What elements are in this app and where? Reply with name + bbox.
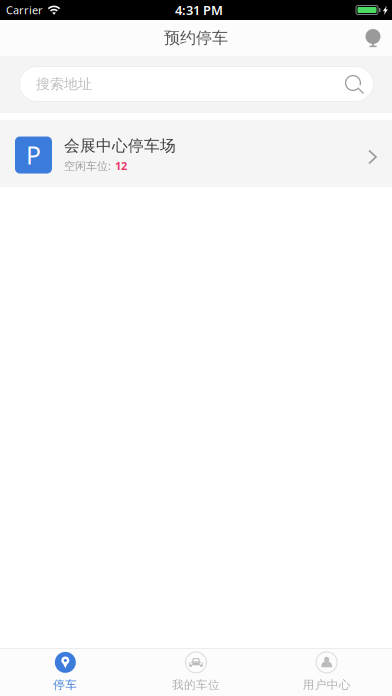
staticText: 预约停车	[164, 28, 228, 48]
button[interactable]: 停车	[0, 648, 131, 696]
button[interactable]: 位置	[351, 20, 392, 55]
staticText: 用户中心	[303, 678, 351, 692]
staticText: 空闲车位:	[64, 158, 111, 173]
staticText: 会展中心停车场	[64, 136, 176, 155]
staticText: P	[26, 139, 41, 171]
staticText: 12	[115, 158, 127, 173]
button[interactable]: P	[0, 120, 392, 187]
staticText: 4:31 PM	[175, 1, 223, 18]
staticText: Carrier	[6, 3, 43, 17]
staticText: 搜索地址	[36, 75, 92, 93]
button[interactable]: 搜索地址	[0, 56, 392, 113]
button[interactable]: 用户中心	[261, 648, 392, 696]
staticText: 停车	[53, 678, 77, 692]
staticText: 我的车位	[172, 678, 220, 692]
button[interactable]: 我的车位	[131, 648, 261, 696]
